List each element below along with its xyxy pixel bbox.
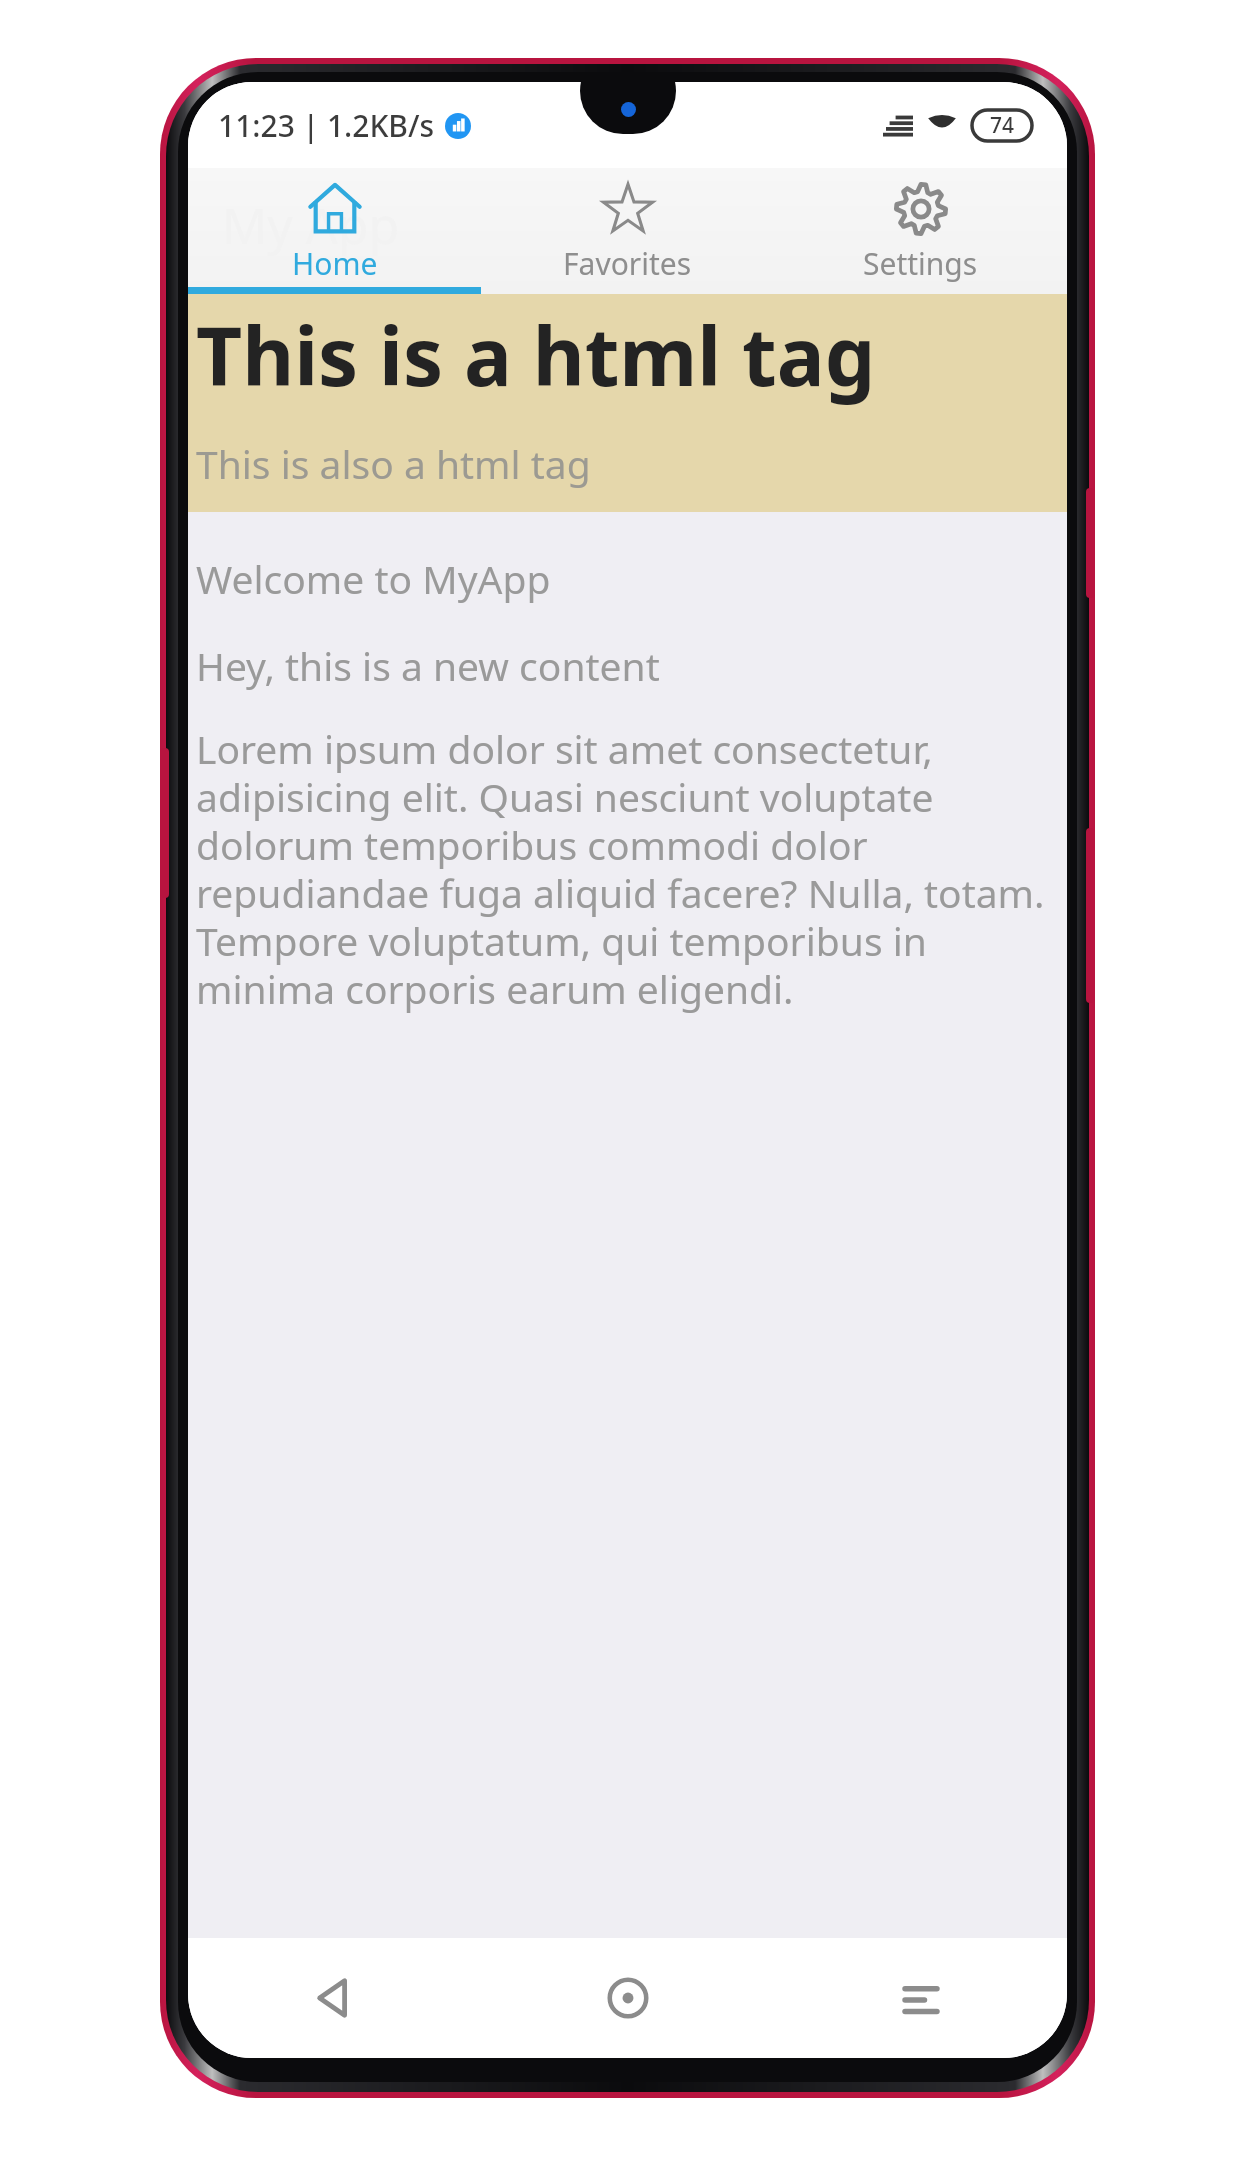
button[interactable]: Home [188, 168, 481, 294]
button[interactable]: Back [188, 1938, 481, 2058]
staticText: 74 [990, 111, 1015, 140]
staticText: Settings [863, 243, 978, 284]
button[interactable]: Home [481, 1938, 774, 2058]
button[interactable]: Favorites [481, 168, 774, 294]
button[interactable]: Recent apps [774, 1938, 1067, 2058]
staticText: My App [222, 191, 400, 259]
staticText: This is a html tag [196, 300, 876, 409]
staticText: Favorites [563, 243, 692, 284]
other: Favorites [600, 181, 656, 237]
staticText: Hey, this is a new content [196, 639, 660, 692]
staticText: Welcome to MyApp [196, 552, 551, 605]
button[interactable]: Settings [774, 168, 1067, 294]
staticText: This is also a html tag [196, 437, 591, 490]
staticText: Home [292, 243, 378, 284]
other: Settings [893, 181, 949, 237]
other: Home [307, 181, 363, 237]
staticText: Lorem ipsum dolor sit amet consectetur, … [196, 726, 1067, 1014]
staticText: 11:23 | 1.2KB/s [218, 105, 435, 146]
